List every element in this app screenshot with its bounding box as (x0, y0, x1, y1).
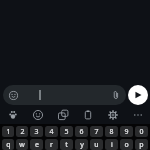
button[interactable]: 0 (135, 126, 148, 137)
button[interactable]: Stickers (0, 106, 25, 124)
button[interactable]: t (60, 139, 73, 150)
button[interactable]: o (120, 139, 133, 150)
button[interactable]: GIF (50, 106, 75, 124)
button[interactable]: 3 (30, 126, 43, 137)
staticText: 6 (79, 127, 84, 137)
button[interactable]: r (45, 139, 58, 150)
staticText: 4 (49, 127, 54, 137)
button[interactable]: 4 (45, 126, 58, 137)
button[interactable]: 5 (60, 126, 73, 137)
staticText: p (139, 140, 144, 150)
button[interactable]: Emoji (3, 85, 126, 105)
button[interactable]: Attach file (110, 89, 122, 101)
staticText: y (80, 140, 84, 150)
button[interactable]: 2 (16, 126, 28, 137)
staticText: 7 (94, 127, 99, 137)
button[interactable]: 9 (120, 126, 133, 137)
button[interactable]: 1 (2, 126, 14, 137)
staticText: u (94, 140, 99, 150)
staticText: 9 (124, 127, 129, 137)
button[interactable]: Emoji (25, 106, 50, 124)
button[interactable]: p (135, 139, 148, 150)
button[interactable]: u (90, 139, 103, 150)
button[interactable]: y (75, 139, 88, 150)
staticText: 5 (64, 127, 69, 137)
button[interactable]: More (125, 106, 150, 124)
button[interactable]: q (2, 139, 14, 150)
staticText: w (19, 140, 25, 150)
staticText: t (65, 140, 68, 150)
staticText: 0 (139, 127, 144, 137)
button[interactable]: Clipboard (75, 106, 100, 124)
button[interactable]: 6 (75, 126, 88, 137)
staticText: r (50, 140, 53, 150)
staticText: 1 (6, 127, 11, 137)
button[interactable]: w (16, 139, 28, 150)
button[interactable]: Send (128, 85, 148, 105)
staticText: e (35, 140, 39, 150)
staticText: q (6, 140, 11, 150)
staticText: 8 (109, 127, 114, 137)
button[interactable]: i (105, 139, 118, 150)
button[interactable]: 7 (90, 126, 103, 137)
staticText: 2 (20, 127, 25, 137)
staticText: 3 (34, 127, 39, 137)
button[interactable]: Emoji (7, 89, 19, 101)
button[interactable]: 8 (105, 126, 118, 137)
staticText: i (111, 140, 113, 150)
button[interactable]: e (30, 139, 43, 150)
button[interactable]: Settings (100, 106, 125, 124)
staticText: o (124, 140, 129, 150)
